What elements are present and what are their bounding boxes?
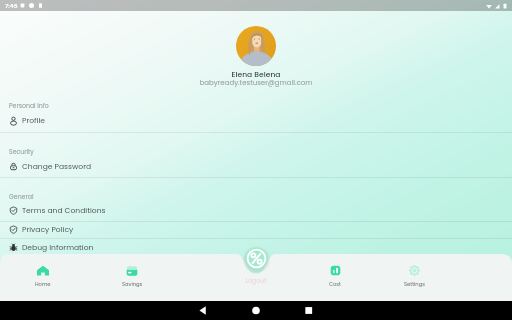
button[interactable]: Logout [0,276,512,285]
button[interactable]: Profile [0,112,512,129]
staticText: Privacy Policy [22,224,74,235]
staticText: Settings [404,281,425,288]
button[interactable]: Terms and Conditions [0,202,512,219]
staticText: General [9,192,34,201]
staticText: Elena Belena [0,69,512,80]
staticText: Savings [122,281,143,288]
button[interactable]: Home [17,261,69,288]
staticText: Security [9,147,34,156]
staticText: Change Password [22,161,92,172]
staticText: Personal info [9,101,49,110]
staticText: Cost [329,281,341,288]
button[interactable]: Cost [309,261,361,288]
button[interactable]: Settings [388,261,440,288]
staticText: babyready.testuser@gmail.com [0,78,512,88]
staticText: Debug Information [22,242,94,253]
staticText: Home [35,281,51,288]
button[interactable]: Savings [106,261,158,288]
button[interactable]: Discounts [242,244,271,273]
staticText: 7:45 [5,2,18,10]
staticText: Profile [22,115,46,126]
button[interactable]: Privacy Policy [0,221,512,238]
button[interactable]: Change Password [0,158,512,175]
staticText: Terms and Conditions [22,205,106,216]
button[interactable]: Debug Information [0,239,512,256]
